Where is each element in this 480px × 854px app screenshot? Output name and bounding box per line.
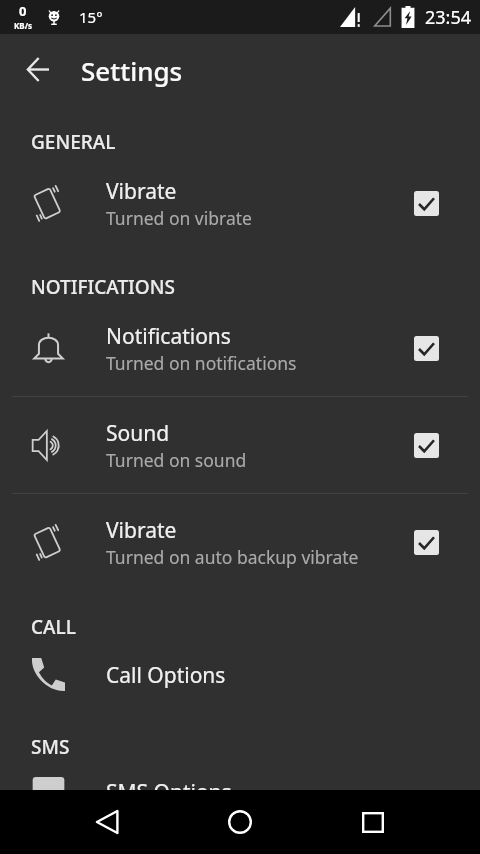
staticText: Notifications <box>106 322 231 351</box>
button[interactable]: Call Options <box>0 640 480 714</box>
staticText: Vibrate <box>106 177 177 206</box>
button[interactable]: Navigate up <box>14 41 62 89</box>
staticText: Turned on notifications <box>106 351 297 375</box>
staticText: 0 <box>19 2 27 20</box>
button[interactable]: Vibrate <box>0 494 480 590</box>
staticText: SMS <box>31 734 70 760</box>
button[interactable]: Toggle Notifications <box>406 328 446 368</box>
staticText: 15° <box>79 7 103 27</box>
staticText: Settings <box>81 53 183 88</box>
button[interactable]: Home <box>160 790 320 854</box>
staticText: GENERAL <box>31 129 116 155</box>
staticText: CALL <box>31 614 76 640</box>
staticText: Turned on sound <box>106 448 247 472</box>
staticText: 23:54 <box>425 5 472 30</box>
button[interactable]: Notifications <box>0 300 480 396</box>
button[interactable]: Toggle Vibrate <box>406 183 446 223</box>
button[interactable]: Back <box>0 790 160 854</box>
button[interactable]: SMS Options <box>0 757 480 790</box>
staticText: SMS Options <box>106 778 232 790</box>
staticText: Turned on auto backup vibrate <box>106 545 359 569</box>
button[interactable]: Recent apps <box>320 790 480 854</box>
staticText: NOTIFICATIONS <box>31 274 175 300</box>
staticText: Vibrate <box>106 516 177 545</box>
staticText: Turned on vibrate <box>106 206 252 230</box>
staticText: Sound <box>106 419 170 448</box>
button[interactable]: Sound <box>0 397 480 493</box>
button[interactable]: Toggle Sound <box>406 425 446 465</box>
staticText: KB/s <box>14 20 32 31</box>
staticText: Call Options <box>106 661 226 690</box>
button[interactable]: Vibrate <box>0 155 480 251</box>
button[interactable]: Toggle Vibrate <box>406 522 446 562</box>
